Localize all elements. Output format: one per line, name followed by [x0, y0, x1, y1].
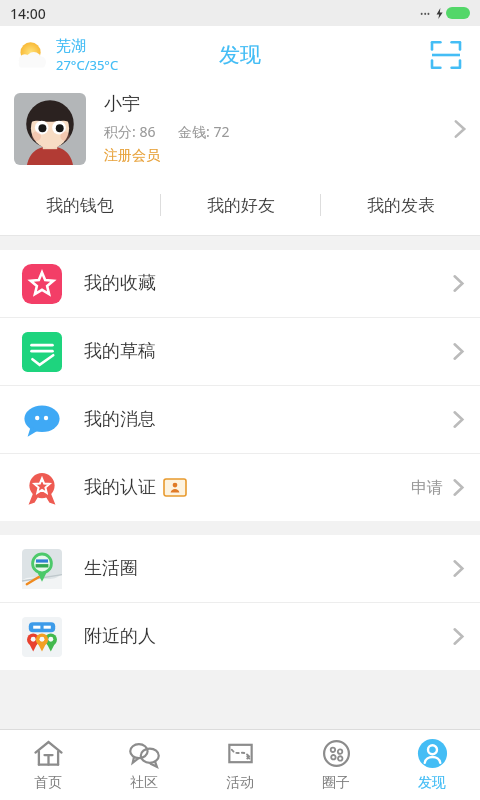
- button[interactable]: 我的认证: [0, 454, 480, 521]
- staticText: 发现: [418, 774, 446, 792]
- button[interactable]: 小宇: [0, 84, 480, 174]
- staticText: 发现: [219, 42, 261, 68]
- staticText: 首页: [34, 774, 62, 792]
- staticText: 社区: [130, 774, 158, 792]
- staticText: 附近的人: [84, 625, 156, 648]
- button[interactable]: 附近的人: [0, 603, 480, 670]
- staticText: 我的钱包: [46, 195, 114, 216]
- button[interactable]: 我的消息: [0, 386, 480, 453]
- button[interactable]: Scan QR code: [426, 35, 466, 75]
- staticText: 芜湖: [56, 37, 86, 56]
- staticText: 我的好友: [207, 195, 275, 216]
- staticText: 我的草稿: [84, 340, 156, 363]
- button[interactable]: 我的草稿: [0, 318, 480, 385]
- button[interactable]: 活动: [192, 730, 288, 800]
- button[interactable]: 圈子: [288, 730, 384, 800]
- button[interactable]: 我的好友: [161, 174, 320, 236]
- staticText: 小宇: [104, 93, 140, 116]
- button[interactable]: 芜湖: [10, 33, 123, 78]
- staticText: 金钱: 72: [178, 122, 230, 141]
- staticText: 生活圈: [84, 557, 138, 580]
- staticText: 14:00: [10, 4, 46, 23]
- button[interactable]: 我的钱包: [0, 174, 160, 236]
- staticText: 积分: 86: [104, 122, 156, 141]
- staticText: 我的认证: [84, 476, 156, 499]
- staticText: 活动: [226, 774, 254, 792]
- button[interactable]: 首页: [0, 730, 96, 800]
- staticText: 我的消息: [84, 408, 156, 431]
- button[interactable]: 生活圈: [0, 535, 480, 602]
- staticText: 申请: [411, 478, 443, 498]
- button[interactable]: 我的收藏: [0, 250, 480, 317]
- staticText: 我的发表: [367, 195, 435, 216]
- button[interactable]: 我的发表: [321, 174, 480, 236]
- staticText: 圈子: [322, 774, 350, 792]
- staticText: 我的收藏: [84, 272, 156, 295]
- staticText: 注册会员: [104, 147, 160, 165]
- button[interactable]: 社区: [96, 730, 192, 800]
- button[interactable]: 发现: [384, 730, 480, 800]
- staticText: 27°C/35°C: [56, 56, 119, 74]
- staticText: •••: [420, 7, 431, 19]
